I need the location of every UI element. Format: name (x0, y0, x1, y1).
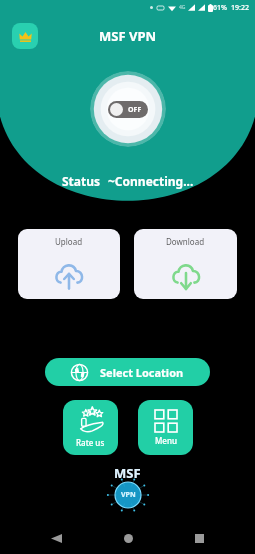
staticText: OFF (128, 105, 142, 115)
button[interactable]: Select Location (45, 358, 210, 386)
staticText: ~Connecting... (108, 173, 194, 189)
staticText: VPN (121, 490, 136, 500)
button[interactable]: Upload (18, 229, 120, 299)
staticText: MSF VPN (99, 27, 157, 45)
button[interactable]: Download (134, 229, 237, 299)
staticText: Status (62, 173, 101, 189)
button[interactable]: Power toggle OFF (90, 71, 166, 147)
staticText: Menu (155, 435, 177, 446)
button[interactable]: Back (40, 522, 72, 554)
staticText: Upload (55, 236, 83, 247)
button[interactable]: Premium (12, 23, 38, 49)
staticText: 19:22 (231, 3, 249, 13)
staticText: MSF (114, 464, 141, 482)
button[interactable]: Rate us (63, 400, 118, 455)
staticText: 4G (179, 4, 186, 11)
staticText: Select Location (100, 365, 184, 380)
staticText: Download (166, 236, 205, 247)
staticText: 61% (213, 3, 227, 13)
button[interactable]: Recent apps (183, 522, 215, 554)
button[interactable]: Home (112, 522, 144, 554)
button[interactable]: Menu (138, 400, 193, 455)
staticText: Rate us (76, 437, 105, 448)
